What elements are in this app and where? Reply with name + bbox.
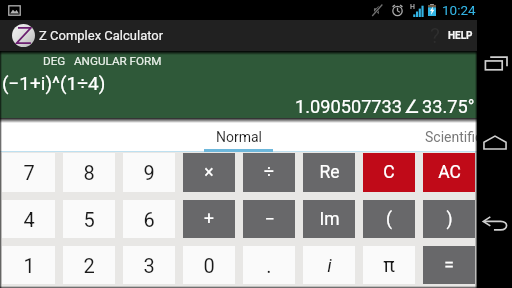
staticText: 9 [143, 161, 155, 184]
staticText: = [444, 255, 454, 276]
button[interactable]: C [363, 153, 415, 192]
staticText: i [327, 254, 332, 276]
button[interactable]: HELP [438, 20, 477, 51]
button[interactable]: 0 [183, 246, 235, 284]
button[interactable]: . [243, 246, 295, 284]
button[interactable]: Im [303, 200, 355, 238]
button[interactable]: 1 [2, 246, 55, 284]
button[interactable]: ( [363, 200, 415, 238]
staticText: − [264, 209, 275, 230]
button[interactable]: 2 [63, 246, 115, 284]
button[interactable]: 5 [63, 200, 115, 238]
staticText: Im [319, 209, 340, 230]
staticText: ( [386, 209, 392, 230]
staticText: 3 [143, 254, 155, 277]
staticText: . [266, 254, 272, 277]
staticText: 0 [203, 254, 215, 277]
staticText: 5 [83, 208, 95, 231]
staticText: ) [446, 209, 453, 230]
staticText: 6 [143, 208, 155, 231]
button[interactable]: − [243, 200, 295, 238]
button[interactable]: × [183, 153, 235, 192]
button[interactable]: ) [423, 200, 475, 238]
button[interactable]: 4 [2, 200, 55, 238]
button[interactable]: 6 [123, 200, 175, 238]
staticText: HELP [448, 30, 473, 42]
staticText: + [204, 209, 214, 230]
button[interactable]: Home [477, 103, 512, 182]
button[interactable]: + [183, 200, 235, 238]
staticText: 2 [83, 254, 95, 277]
staticText: 8 [83, 161, 95, 184]
button[interactable]: Normal [154, 124, 324, 150]
button[interactable]: = [423, 246, 475, 284]
staticText: C [383, 162, 395, 183]
staticText: (−1+i)^(1÷4) [2, 72, 106, 94]
staticText: 4 [23, 208, 35, 231]
staticText: Normal [216, 129, 263, 145]
button[interactable]: Back [477, 184, 512, 263]
button[interactable]: Re [303, 153, 355, 192]
staticText: H [410, 3, 415, 11]
staticText: 1.090507733 ∠ 33.75° [295, 96, 475, 117]
button[interactable]: ÷ [243, 153, 295, 192]
button[interactable]: AC [423, 153, 475, 192]
button[interactable]: π [363, 246, 415, 284]
staticText: × [204, 162, 214, 183]
button[interactable]: 9 [123, 153, 175, 192]
staticText: ? [430, 24, 440, 49]
staticText: 1 [23, 254, 35, 277]
button[interactable]: Recent apps [477, 24, 512, 103]
staticText: 7 [23, 161, 35, 184]
staticText: Scientific [425, 129, 483, 145]
staticText: DEG ANGULAR FORM [43, 54, 162, 68]
button[interactable]: i [303, 246, 355, 284]
button[interactable]: 7 [2, 153, 55, 192]
staticText: AC [438, 162, 461, 183]
button[interactable]: 3 [123, 246, 175, 284]
staticText: Z Complex Calculator [39, 28, 164, 43]
staticText: 10:24 [442, 2, 476, 18]
staticText: π [383, 254, 395, 277]
button[interactable]: 8 [63, 153, 115, 192]
button[interactable]: Z Complex Calculator [12, 24, 164, 47]
staticText: Re [319, 162, 340, 183]
staticText: ÷ [264, 162, 274, 183]
button[interactable]: Scientific [369, 124, 512, 150]
